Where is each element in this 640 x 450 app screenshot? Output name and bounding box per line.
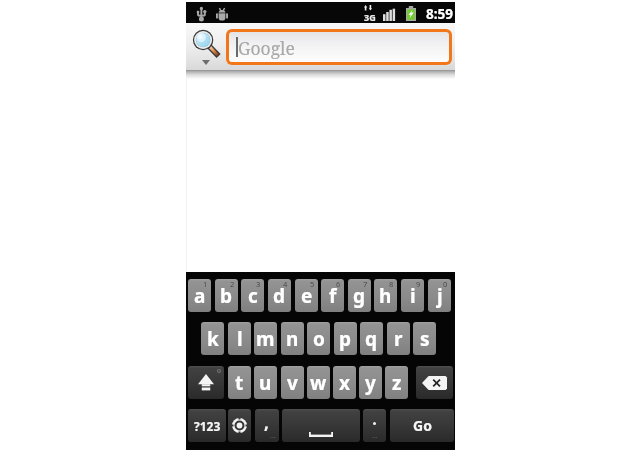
staticText: c: [248, 283, 258, 309]
staticText: i: [410, 283, 416, 309]
button[interactable]: x: [333, 366, 356, 399]
staticText: 6: [336, 279, 341, 289]
staticText: f: [329, 283, 337, 309]
button[interactable]: a: [188, 279, 211, 312]
staticText: 2: [230, 279, 235, 289]
staticText: Go: [413, 416, 432, 435]
button[interactable]: Go: [390, 409, 454, 442]
staticText: j: [437, 283, 443, 309]
button[interactable]: Input method settings: [228, 409, 251, 442]
button[interactable]: i: [401, 279, 424, 312]
staticText: v: [287, 370, 298, 396]
staticText: ,: [264, 411, 269, 434]
staticText: 1: [203, 279, 208, 289]
staticText: b: [220, 283, 233, 309]
button[interactable]: Space: [282, 409, 360, 442]
staticText: k: [207, 326, 219, 352]
staticText: u: [259, 370, 272, 396]
staticText: p: [339, 326, 352, 352]
staticText: d: [273, 283, 286, 309]
staticText: g: [353, 283, 366, 309]
button[interactable]: v: [281, 366, 304, 399]
staticText: Google: [238, 36, 295, 60]
staticText: 4: [283, 279, 288, 289]
staticText: o: [313, 326, 325, 352]
button[interactable]: z: [385, 366, 408, 399]
button[interactable]: l: [228, 322, 251, 355]
button[interactable]: k: [201, 322, 224, 355]
button[interactable]: Delete: [416, 366, 453, 399]
staticText: 3: [256, 279, 261, 289]
staticText: 0: [443, 279, 448, 289]
button[interactable]: d: [268, 279, 291, 312]
staticText: h: [379, 283, 392, 309]
button[interactable]: u: [254, 366, 277, 399]
staticText: s: [420, 326, 430, 352]
staticText: t: [235, 370, 244, 396]
staticText: l: [237, 326, 243, 352]
staticText: m: [256, 326, 275, 352]
button[interactable]: s: [413, 322, 436, 355]
button[interactable]: o: [307, 322, 330, 355]
button[interactable]: y: [359, 366, 382, 399]
staticText: 5: [310, 279, 315, 289]
button[interactable]: f: [321, 279, 344, 312]
button[interactable]: b: [215, 279, 238, 312]
staticText: 3G: [364, 11, 376, 23]
button[interactable]: w: [307, 366, 330, 399]
staticText: 9: [416, 279, 421, 289]
staticText: 8:59: [426, 5, 453, 23]
staticText: q: [365, 326, 378, 352]
staticText: 7: [363, 279, 368, 289]
button[interactable]: t: [228, 366, 251, 399]
button[interactable]: Google: [226, 29, 452, 65]
button[interactable]: c: [241, 279, 264, 312]
button[interactable]: Shift: [188, 366, 224, 399]
button[interactable]: g: [348, 279, 371, 312]
staticText: a: [194, 283, 206, 309]
button[interactable]: e: [295, 279, 318, 312]
button[interactable]: Search engine selector: [186, 23, 225, 70]
button[interactable]: Period: [363, 409, 386, 442]
button[interactable]: p: [334, 322, 357, 355]
staticText: x: [339, 370, 350, 396]
button[interactable]: n: [281, 322, 304, 355]
button[interactable]: Symbols: [188, 409, 226, 442]
staticText: n: [286, 326, 299, 352]
button[interactable]: r: [387, 322, 410, 355]
staticText: w: [310, 370, 327, 396]
button[interactable]: q: [360, 322, 383, 355]
button[interactable]: j: [428, 279, 451, 312]
button[interactable]: m: [254, 322, 277, 355]
button[interactable]: h: [374, 279, 397, 312]
staticText: e: [301, 283, 313, 309]
button[interactable]: Comma: [255, 409, 279, 442]
staticText: ...: [372, 431, 378, 441]
staticText: y: [365, 370, 376, 396]
staticText: ...: [270, 431, 276, 441]
staticText: 8: [389, 279, 394, 289]
staticText: r: [394, 326, 403, 352]
staticText: ?123: [194, 418, 221, 434]
staticText: z: [392, 370, 402, 396]
